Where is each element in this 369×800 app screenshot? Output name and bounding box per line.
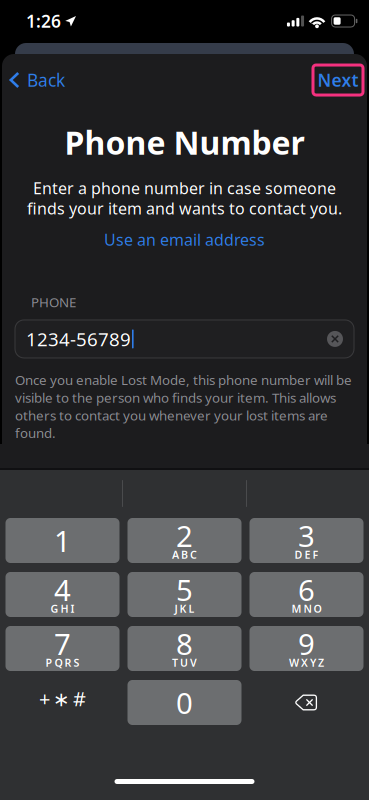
staticText: W X Y Z xyxy=(289,655,324,670)
staticText: Enter a phone number in case someone xyxy=(33,177,336,199)
staticText: Use an email address xyxy=(104,229,265,250)
staticText: P Q R S xyxy=(45,655,79,670)
button[interactable]: 7 xyxy=(5,626,119,671)
button[interactable]: 3 xyxy=(249,518,363,563)
staticText: 1 xyxy=(54,521,71,560)
staticText: J K L xyxy=(174,601,194,616)
staticText: 1:26 xyxy=(26,9,61,32)
staticText: 7 xyxy=(54,624,71,663)
button[interactable]: Back xyxy=(2,60,77,99)
button[interactable]: 0 xyxy=(127,680,241,725)
button[interactable]: Use an email address xyxy=(94,221,275,258)
staticText: 9 xyxy=(298,624,315,663)
button[interactable]: 5 xyxy=(127,572,241,617)
staticText: T U V xyxy=(172,655,197,670)
staticText: 0 xyxy=(176,683,193,722)
staticText: Phone Number xyxy=(64,121,304,163)
button[interactable]: 1 xyxy=(5,518,119,563)
staticText: 5 xyxy=(176,570,193,609)
button[interactable]: Next xyxy=(313,65,363,95)
button[interactable]: 2 xyxy=(127,518,241,563)
button[interactable]: 8 xyxy=(127,626,241,671)
staticText: PHONE xyxy=(31,293,76,311)
staticText: 4 xyxy=(54,570,71,609)
staticText: Once you enable Lost Mode, this phone nu… xyxy=(15,371,352,442)
staticText: Back xyxy=(27,68,65,91)
button[interactable]: Clear text xyxy=(327,331,343,347)
staticText: Next xyxy=(317,68,358,91)
staticText: 1234-56789 xyxy=(26,327,131,351)
button[interactable]: 9 xyxy=(249,626,363,671)
staticText: 2 xyxy=(176,516,193,555)
button[interactable]: Plus, star, pound xyxy=(5,680,119,725)
button[interactable]: Delete xyxy=(249,680,363,725)
staticText: 8 xyxy=(176,624,193,663)
staticText: 3 xyxy=(298,516,315,555)
staticText: M N O xyxy=(291,601,321,616)
staticText: + ∗ # xyxy=(39,685,86,712)
staticText: G H I xyxy=(50,601,74,616)
staticText: finds your item and wants to contact you… xyxy=(27,198,342,219)
button[interactable]: 4 xyxy=(5,572,119,617)
staticText: A B C xyxy=(172,547,197,562)
button[interactable]: 6 xyxy=(249,572,363,617)
staticText: 6 xyxy=(298,570,315,609)
staticText: D E F xyxy=(294,547,318,562)
